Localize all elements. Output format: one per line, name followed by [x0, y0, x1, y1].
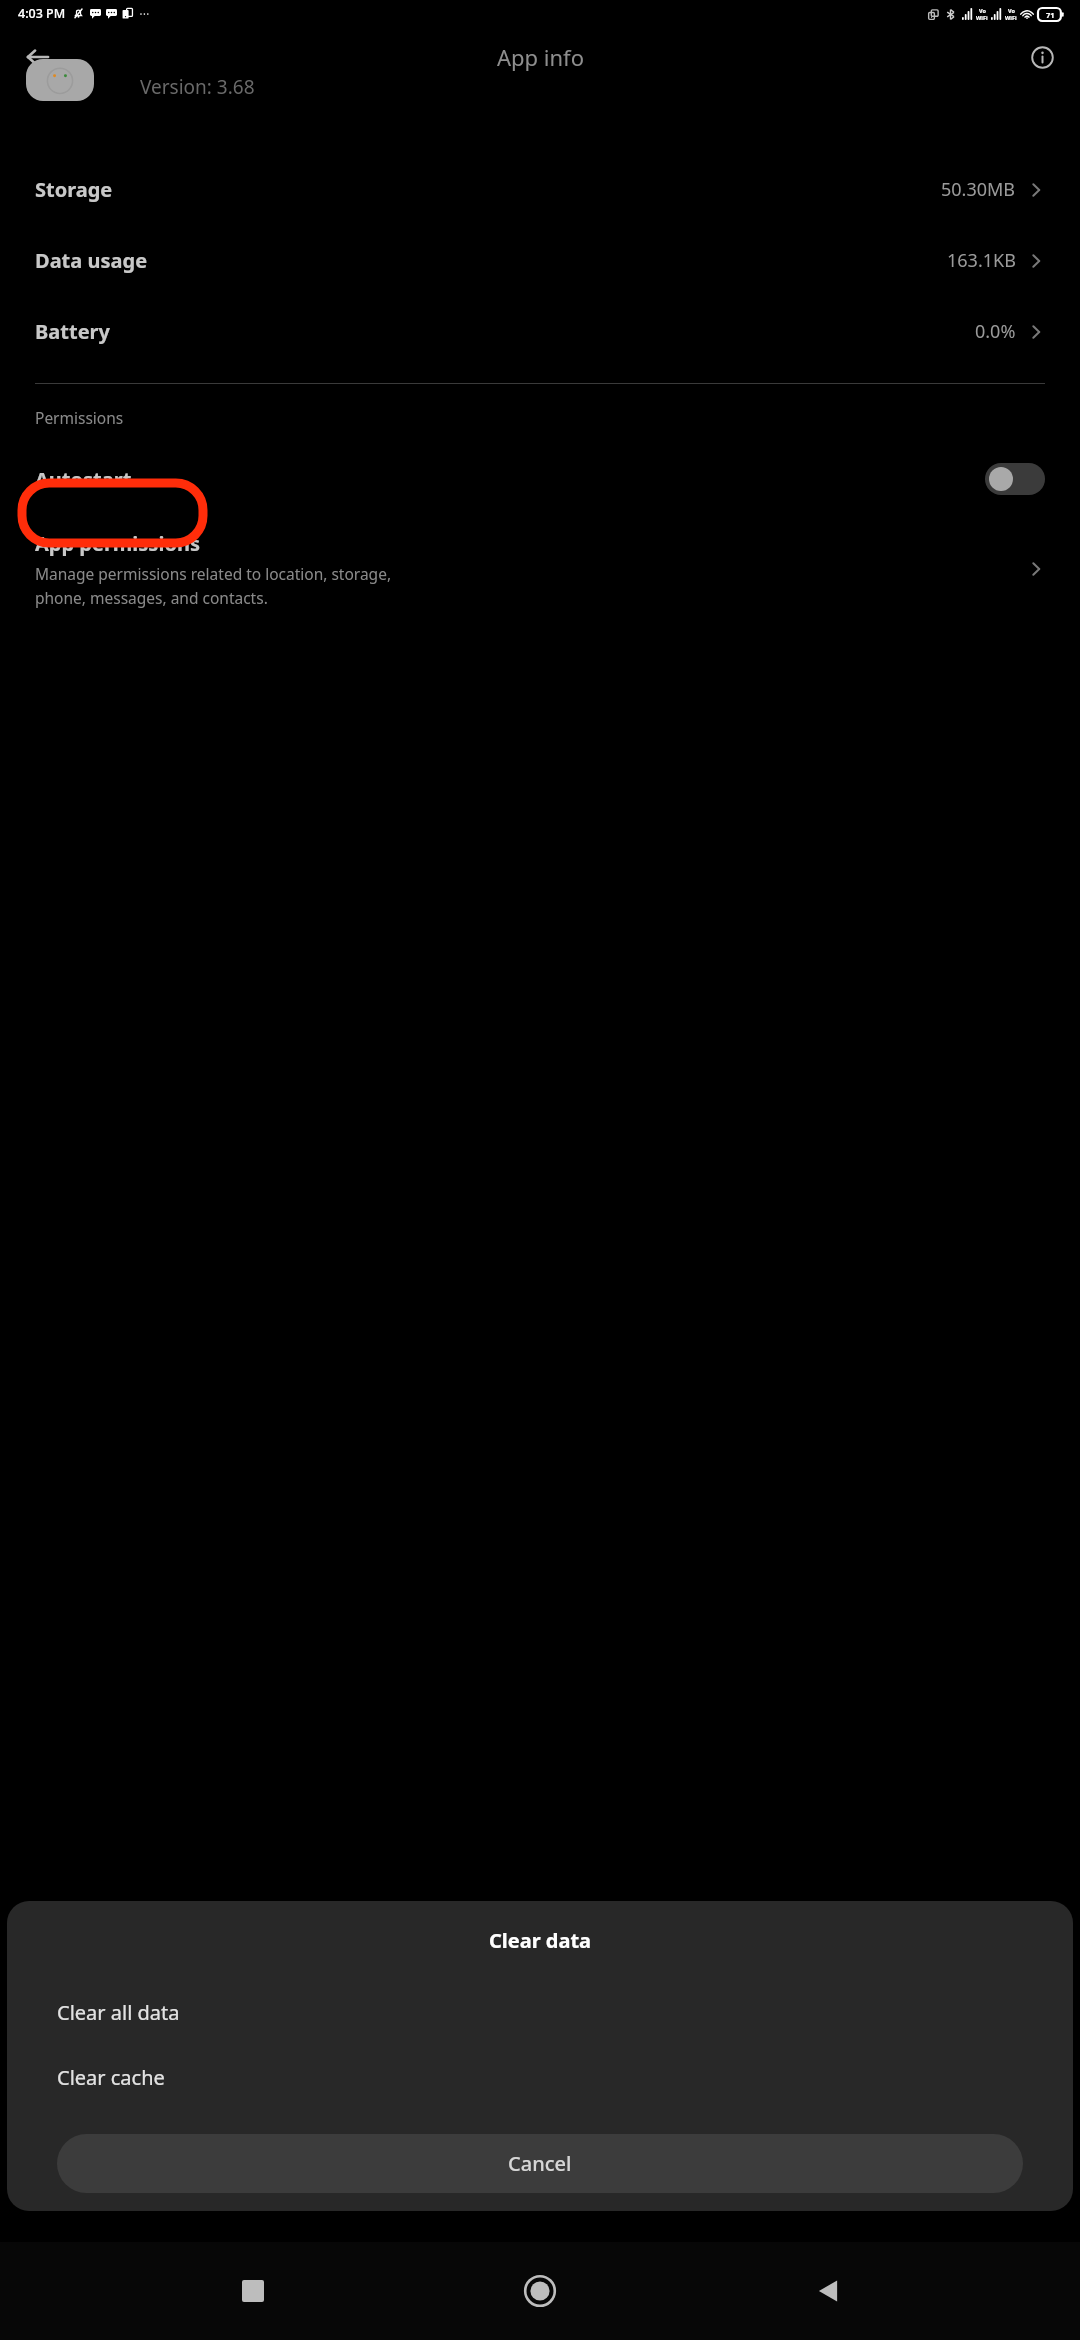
button[interactable]: Autostart: [0, 450, 1080, 508]
staticText: Vo: [1008, 7, 1015, 14]
button[interactable]: Back: [793, 2256, 863, 2326]
staticText: 50.30MB: [941, 177, 1016, 202]
staticText: Clear cache: [57, 2064, 165, 2091]
staticText: 4:03 PM: [18, 5, 66, 22]
staticText: 163.1KB: [947, 248, 1016, 273]
staticText: Autostart: [35, 466, 132, 493]
button[interactable]: About: [1018, 33, 1066, 81]
button[interactable]: Battery: [0, 296, 1080, 367]
button[interactable]: Data usage: [0, 225, 1080, 296]
staticText: App permissions: [35, 530, 200, 557]
button[interactable]: Cancel: [57, 2134, 1023, 2193]
button[interactable]: Storage: [0, 154, 1080, 225]
staticText: Vo: [979, 7, 986, 14]
staticText: Battery: [35, 318, 110, 345]
button[interactable]: Clear cache: [7, 2046, 1073, 2108]
staticText: Cancel: [508, 2150, 572, 2177]
staticText: Data usage: [35, 247, 148, 274]
staticText: phone, messages, and contacts.: [35, 587, 268, 608]
staticText: Version: 3.68: [140, 74, 255, 100]
button[interactable]: Recents: [218, 2256, 288, 2326]
staticText: Clear all data: [57, 1999, 180, 2026]
staticText: Storage: [35, 176, 113, 203]
staticText: WiFi: [976, 14, 988, 21]
staticText: WiFi: [1005, 14, 1017, 21]
staticText: 0.0%: [975, 319, 1016, 344]
button[interactable]: Home: [505, 2256, 575, 2326]
button[interactable]: App permissions: [0, 528, 1080, 610]
staticText: Manage permissions related to location, …: [35, 563, 392, 584]
button[interactable]: Back: [14, 33, 62, 81]
staticText: App info: [497, 42, 584, 72]
button[interactable]: Autostart toggle: [985, 463, 1045, 495]
button[interactable]: Clear all data: [7, 1978, 1073, 2046]
staticText: Clear data: [7, 1927, 1073, 1954]
staticText: 71: [1046, 10, 1055, 20]
staticText: Permissions: [35, 407, 124, 428]
